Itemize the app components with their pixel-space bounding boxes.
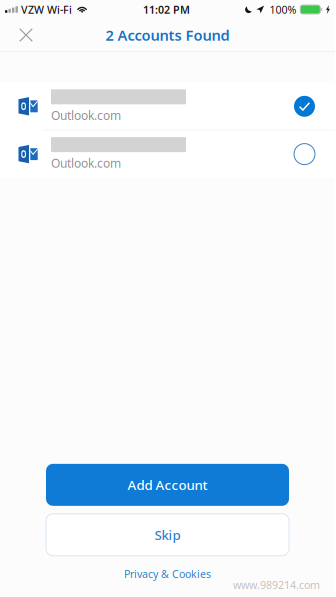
staticText: 2 Accounts Found (105, 25, 229, 45)
button[interactable]: Add Account (46, 464, 289, 506)
staticText: www.989214.com (233, 578, 320, 592)
button[interactable]: Skip (46, 514, 289, 556)
staticText: 11:02 PM (143, 2, 190, 17)
staticText: Privacy & Cookies (124, 567, 211, 581)
button[interactable]: Outlook.com (0, 83, 335, 130)
button[interactable]: Outlook.com (0, 131, 335, 178)
button[interactable]: Privacy & Cookies (0, 567, 335, 581)
staticText: Outlook.com (51, 155, 121, 171)
staticText: Outlook.com (51, 107, 121, 123)
staticText: Add Account (127, 476, 207, 494)
staticText: Skip (154, 526, 180, 544)
staticText: 100% (269, 2, 296, 17)
staticText: VZW Wi-Fi (21, 2, 72, 17)
button[interactable]: Close (6, 21, 46, 49)
